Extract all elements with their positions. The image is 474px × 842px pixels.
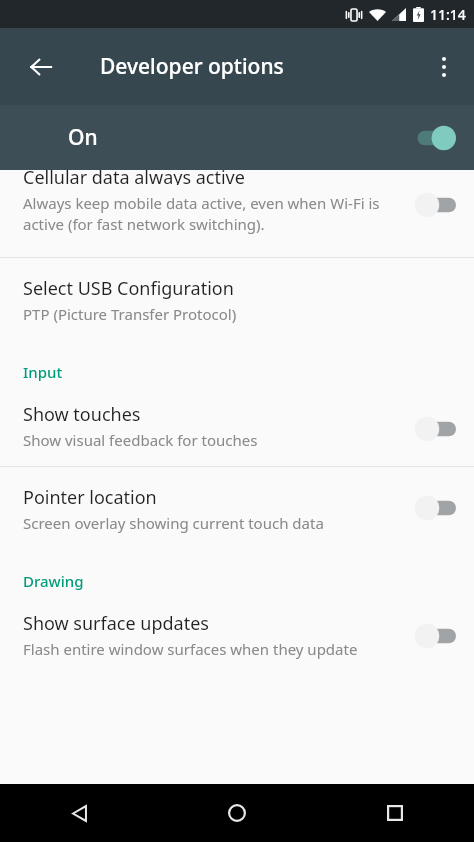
button[interactable]: Show surface updates	[0, 601, 474, 671]
button[interactable]: Navigate up	[17, 43, 65, 91]
button[interactable]: Home	[158, 784, 316, 842]
staticText: Pointer location	[23, 485, 157, 510]
button[interactable]: Pointer location	[0, 467, 474, 549]
staticText: Drawing	[23, 571, 84, 591]
staticText: Always keep mobile data active, even whe…	[23, 193, 392, 235]
staticText: Cellular data always active	[23, 170, 245, 185]
button[interactable]: Select USB Configuration	[0, 258, 474, 340]
staticText: Developer options	[100, 52, 284, 81]
button[interactable]: Show touches	[0, 392, 474, 466]
button[interactable]: Recent apps	[316, 784, 474, 842]
staticText: Screen overlay showing current touch dat…	[23, 513, 324, 533]
staticText: Select USB Configuration	[23, 276, 234, 301]
staticText: PTP (Picture Transfer Protocol)	[23, 304, 237, 324]
staticText: On	[68, 123, 98, 152]
staticText: Show surface updates	[23, 611, 209, 636]
button[interactable]: Back	[0, 784, 158, 842]
button[interactable]: More options	[420, 43, 468, 91]
staticText: Input	[23, 362, 63, 382]
staticText: Flash entire window surfaces when they u…	[23, 639, 358, 659]
staticText: 11:14	[430, 5, 466, 24]
button[interactable]: On	[0, 105, 474, 170]
staticText: Show touches	[23, 402, 141, 427]
button[interactable]: Cellular data always active	[0, 170, 474, 257]
staticText: Show visual feedback for touches	[23, 430, 258, 450]
